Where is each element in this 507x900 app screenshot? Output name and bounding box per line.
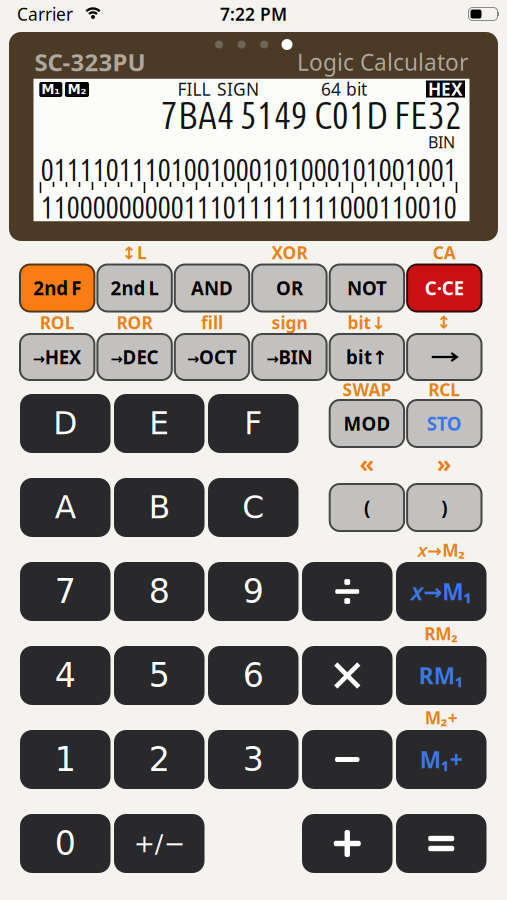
staticText: 11000000000111011111111000110010 [40, 189, 456, 224]
button[interactable]: →OCT [175, 334, 249, 380]
staticText: STO [427, 411, 462, 436]
button[interactable]: Shift right [407, 334, 481, 380]
staticText: +/− [134, 829, 185, 858]
staticText: 7BA4 5149 C01D FE32 [161, 92, 462, 137]
staticText: F [244, 405, 262, 442]
button[interactable]: F [208, 394, 298, 453]
button[interactable]: C [208, 478, 298, 537]
button[interactable]: AND [175, 264, 249, 311]
button[interactable]: 2nd L [97, 264, 172, 311]
button[interactable]: ( [330, 484, 404, 531]
staticText: AND [191, 276, 233, 300]
button[interactable]: MOD [330, 400, 404, 447]
staticText: M₂+ [425, 706, 458, 729]
button[interactable]: Subtract [302, 730, 392, 789]
staticText: RM₂ [424, 622, 458, 645]
staticText: 0 [55, 824, 76, 863]
staticText: 9 [243, 572, 264, 611]
button[interactable]: 7 [20, 562, 110, 621]
button[interactable]: 5 [114, 646, 204, 705]
staticText: C·CE [425, 276, 464, 300]
button[interactable]: ) [407, 484, 481, 531]
staticText: 2 [149, 740, 170, 779]
staticText: B [149, 489, 170, 526]
staticText: sign [271, 311, 307, 334]
button[interactable]: →DEC [97, 334, 172, 380]
button[interactable]: +/− [114, 814, 204, 873]
staticText: 64 bit [321, 77, 367, 100]
button[interactable]: OR [252, 264, 327, 311]
staticText: 2nd L [111, 276, 159, 300]
staticText: BIN [428, 131, 455, 153]
staticText: 𝑥→M₁ [410, 576, 472, 606]
staticText: M₁ [41, 82, 60, 97]
staticText: 4 [55, 656, 76, 695]
button[interactable]: 9 [208, 562, 298, 621]
staticText: 7:22 PM [220, 2, 287, 25]
button[interactable]: →HEX [20, 334, 94, 380]
staticText: C [242, 489, 264, 526]
button[interactable]: 4 [20, 646, 110, 705]
button[interactable]: 𝑥→M₁ [396, 562, 486, 621]
button[interactable]: B [114, 478, 204, 537]
staticText: RM₁ [419, 660, 464, 690]
staticText: CA [433, 241, 456, 264]
staticText: fill [201, 311, 223, 334]
staticText: OR [276, 276, 303, 300]
staticText: ( [364, 495, 370, 520]
staticText: RCL [428, 378, 460, 401]
staticText: FILL [177, 77, 210, 100]
button[interactable]: 0 [20, 814, 110, 873]
staticText: ROL [40, 311, 75, 334]
button[interactable]: 6 [208, 646, 298, 705]
button[interactable]: →BIN [252, 334, 327, 380]
button[interactable]: 2nd F [20, 264, 94, 311]
button[interactable]: Multiply [302, 646, 392, 705]
staticText: 01111011101001000101000101001001 [40, 151, 456, 187]
button[interactable]: C·CE [407, 264, 481, 311]
staticText: bit↑ [346, 345, 388, 369]
button[interactable]: RM₁ [396, 646, 486, 705]
button[interactable]: Divide [302, 562, 392, 621]
button[interactable]: NOT [330, 264, 404, 311]
staticText: →BIN [266, 345, 312, 369]
button[interactable]: Equals [396, 814, 486, 873]
staticText: » [437, 447, 452, 479]
staticText: 5 [149, 656, 170, 695]
button[interactable]: 8 [114, 562, 204, 621]
staticText: M₂ [67, 82, 86, 97]
button[interactable]: bit↑ [330, 334, 404, 380]
button[interactable]: M₁+ [396, 730, 486, 789]
button[interactable]: Add [302, 814, 392, 873]
staticText: bit↓ [347, 311, 386, 334]
staticText: D [53, 405, 77, 442]
staticText: ROR [117, 311, 153, 334]
staticText: 7 [55, 572, 76, 611]
staticText: SC-323PU [34, 46, 145, 78]
staticText: 3 [243, 740, 264, 779]
button[interactable]: 1 [20, 730, 110, 789]
staticText: 1 [55, 740, 76, 779]
button[interactable]: 3 [208, 730, 298, 789]
staticText: HEX [428, 77, 463, 100]
staticText: 8 [149, 572, 170, 611]
staticText: →OCT [187, 345, 237, 369]
staticText: SWAP [342, 378, 391, 401]
staticText: ) [441, 495, 447, 520]
button[interactable]: A [20, 478, 110, 537]
button[interactable]: 2 [114, 730, 204, 789]
staticText: MOD [343, 411, 390, 436]
staticText: SIGN [217, 77, 259, 100]
button[interactable]: D [20, 394, 110, 453]
staticText: ↕ [437, 313, 452, 332]
staticText: 𝑥→M₂ [417, 538, 465, 561]
staticText: A [55, 489, 76, 526]
button[interactable]: STO [407, 400, 481, 447]
staticText: →HEX [33, 345, 82, 369]
staticText: E [149, 405, 169, 442]
staticText: ↕L [122, 241, 147, 264]
staticText: →DEC [111, 345, 159, 369]
button[interactable]: E [114, 394, 204, 453]
staticText: « [359, 447, 374, 479]
staticText: NOT [347, 276, 387, 300]
